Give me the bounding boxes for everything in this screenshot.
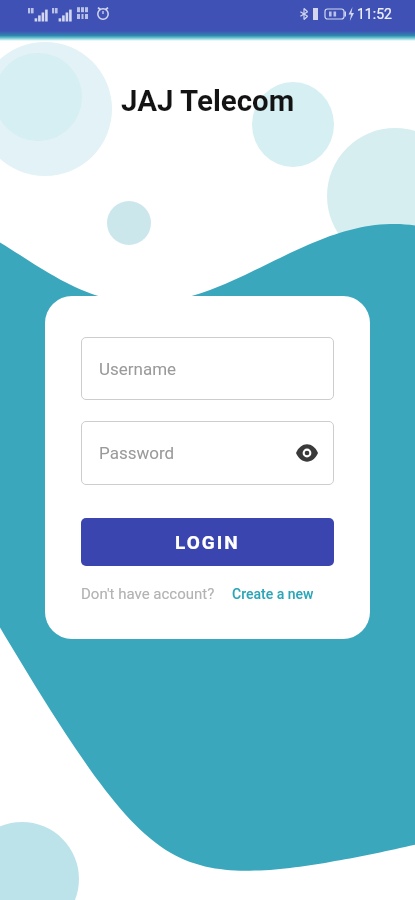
staticText: JAJ Telecom (121, 84, 295, 119)
button[interactable]: Username (81, 337, 334, 400)
button[interactable]: LOGIN (81, 518, 334, 566)
staticText: LOGIN (175, 531, 240, 553)
button[interactable]: Create a new (232, 586, 314, 602)
button[interactable]: Password (81, 421, 334, 485)
button[interactable]: Show password (292, 438, 322, 468)
staticText: Create a new (232, 586, 314, 602)
staticText: Password (99, 443, 175, 463)
staticText: Username (99, 359, 177, 379)
staticText: Don't have account? (81, 585, 215, 603)
staticText: 11:52 (357, 6, 392, 22)
